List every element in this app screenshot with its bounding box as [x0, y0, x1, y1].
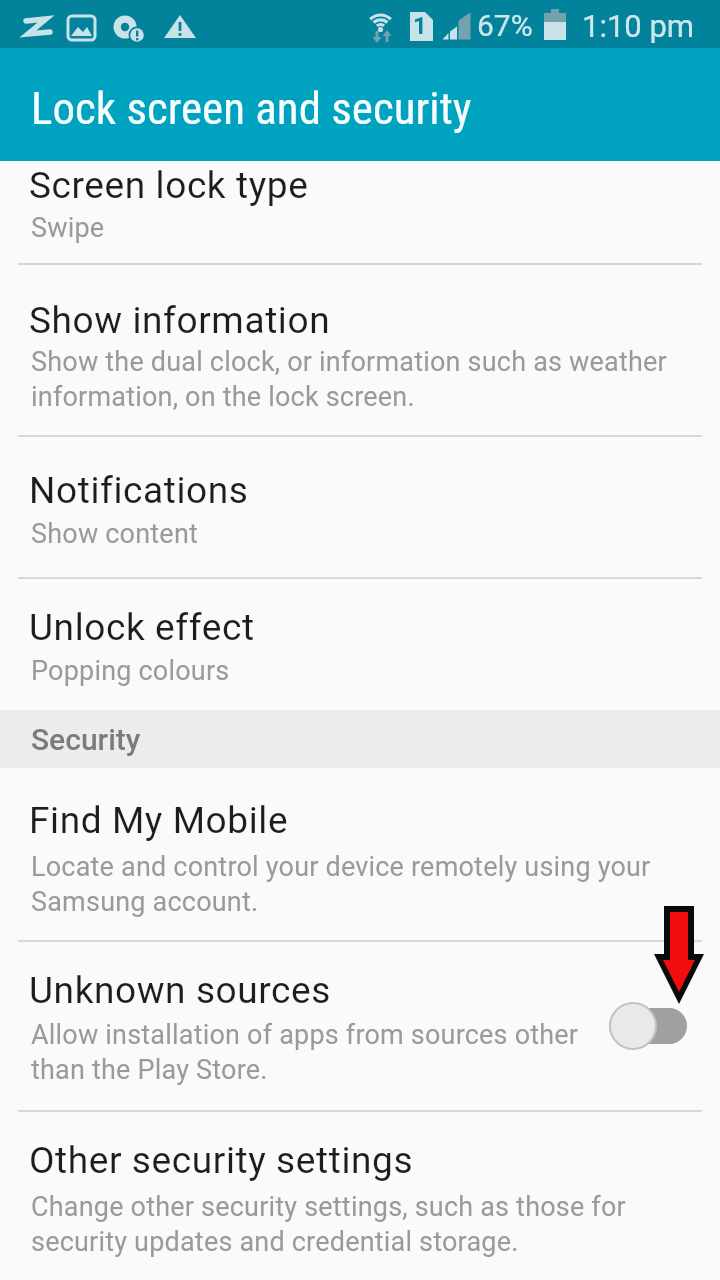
staticText: Locate and control your device remotely … — [31, 851, 651, 917]
button[interactable]: Find My Mobile — [0, 768, 720, 941]
button[interactable]: Lock screen and security — [0, 48, 720, 161]
staticText: Other security settings — [29, 1139, 414, 1182]
button[interactable]: Screen lock type — [0, 161, 720, 264]
staticText: 1:10 pm — [582, 8, 695, 44]
staticText: Swipe — [31, 212, 105, 244]
button[interactable]: Other security settings — [0, 1111, 720, 1280]
staticText: Show content — [31, 518, 199, 550]
staticText: Screen lock type — [29, 164, 309, 207]
staticText: Lock screen and security — [31, 82, 472, 135]
staticText: Notifications — [29, 469, 249, 512]
button[interactable] — [596, 996, 700, 1056]
button[interactable]: Unknown sources — [0, 941, 720, 1111]
staticText: Change other security settings, such as … — [31, 1191, 626, 1257]
button[interactable]: Show information — [0, 264, 720, 436]
staticText: Popping colours — [31, 655, 230, 687]
staticText: Find My Mobile — [29, 799, 289, 842]
staticText: Show information — [29, 299, 331, 342]
staticText: Allow installation of apps from sources … — [31, 1019, 579, 1085]
button[interactable]: Notifications — [0, 436, 720, 578]
staticText: 1 — [413, 12, 427, 40]
button[interactable]: Unlock effect — [0, 578, 720, 710]
staticText: Security — [31, 722, 141, 757]
staticText: Unknown sources — [29, 969, 332, 1012]
staticText: Unlock effect — [29, 606, 255, 649]
staticText: Show the dual clock, or information such… — [31, 346, 667, 412]
staticText: 67% — [477, 8, 533, 43]
